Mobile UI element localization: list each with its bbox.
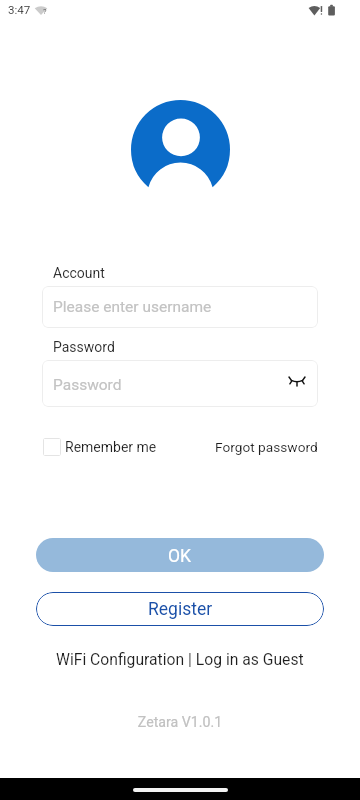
- staticText: ?: [43, 7, 47, 16]
- staticText: WiFi Configuration | Log in as Guest: [56, 650, 304, 668]
- button[interactable]: Show password: [287, 371, 307, 391]
- staticText: OK: [168, 546, 192, 567]
- other: Home: [133, 788, 228, 792]
- staticText: Please enter username: [53, 298, 212, 316]
- button[interactable]: WiFi Configuration | Log in as Guest: [56, 650, 304, 668]
- button[interactable]: Remember me: [42, 438, 157, 456]
- staticText: Zetara V1.0.1: [0, 714, 360, 731]
- staticText: Account: [53, 265, 105, 281]
- staticText: Password: [53, 376, 122, 394]
- button[interactable]: OK: [36, 538, 324, 572]
- button[interactable]: Please enter username: [42, 286, 318, 328]
- staticText: Forgot password: [215, 439, 318, 455]
- staticText: 3:47: [8, 3, 31, 17]
- staticText: Register: [148, 599, 213, 620]
- button[interactable]: Forgot password: [215, 439, 318, 455]
- staticText: Password: [53, 339, 115, 355]
- staticText: Remember me: [65, 439, 157, 455]
- button[interactable]: Register: [36, 592, 324, 626]
